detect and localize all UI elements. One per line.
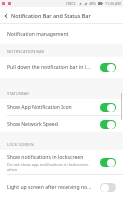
staticText: LOCK SCREEN — [7, 142, 34, 148]
button[interactable]: Toggle on — [100, 158, 116, 167]
button[interactable]: Notification management — [0, 24, 123, 44]
button[interactable]: Pull down the notification bar in loc... — [0, 57, 123, 78]
staticText: STATUSBAR — [7, 91, 29, 97]
button[interactable]: Show notifications in lockscreen — [0, 150, 123, 174]
button[interactable]: Light up screen after receiving notifi..… — [0, 175, 123, 200]
staticText: Pull down the notification bar in loc... — [7, 64, 92, 71]
button[interactable]: Toggle on — [100, 103, 116, 112]
button[interactable]: Show Network Speed — [0, 116, 123, 132]
staticText: Show App Notification Icon — [7, 104, 92, 111]
staticText: Light up screen after receiving notifi..… — [7, 184, 92, 191]
staticText: Notification Bar and Status Bar — [11, 12, 91, 19]
button[interactable]: Toggle on — [100, 120, 116, 129]
staticText: Show Network Speed — [7, 121, 92, 128]
staticText: Show notifications in lockscreen — [7, 154, 84, 161]
button[interactable]: Back — [0, 7, 11, 24]
staticText: Do not show app notifications in lockscr… — [7, 162, 92, 172]
button[interactable]: Toggle off — [100, 183, 116, 192]
button[interactable]: Toggle on — [100, 63, 116, 72]
staticText: NOTIFICATION BAR — [7, 49, 45, 55]
staticText: CMCC — [66, 1, 77, 6]
button[interactable]: Show App Notification Icon — [0, 99, 123, 115]
staticText: Notification management — [7, 31, 69, 38]
staticText: 11:36 AM — [105, 1, 121, 6]
staticText: 48% — [89, 1, 97, 6]
